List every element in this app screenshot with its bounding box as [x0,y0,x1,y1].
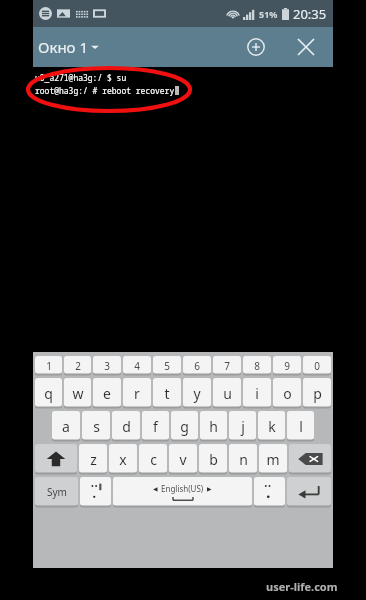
button[interactable]: a [52,411,80,441]
staticText: i [255,384,259,403]
button[interactable]: l [287,411,314,441]
button[interactable]: g [171,411,198,441]
button[interactable]: n [229,444,257,474]
staticText: p [313,384,322,403]
button[interactable]: 3 [93,356,121,375]
staticText: r [134,384,140,403]
button[interactable]: Close [293,34,319,60]
button[interactable]: 2 [64,356,91,375]
staticText: j [241,417,245,436]
button[interactable]: 7 [213,356,241,375]
button[interactable]: o [273,378,301,408]
staticText: v [179,450,187,469]
button[interactable]: d [112,411,140,441]
staticText: 7 [224,359,230,373]
staticText: c [150,450,157,469]
staticText: n [239,450,248,469]
staticText: e [103,384,111,403]
staticText: b [209,450,218,469]
staticText: g [180,417,189,436]
staticText: user-life.com [266,579,338,594]
button[interactable]: h [200,411,227,441]
button[interactable]: 1 [35,356,62,375]
staticText: ▶ [207,485,212,492]
button[interactable]: 9 [273,356,301,375]
button[interactable]: 0 [303,356,331,375]
button[interactable]: t [153,378,181,408]
button[interactable]: 8 [243,356,271,375]
button[interactable]: s [82,411,110,441]
button[interactable]: c [139,444,167,474]
staticText: 1 [46,359,52,373]
staticText: 51% [259,8,278,20]
button[interactable]: i [243,378,271,408]
button[interactable]: j [229,411,256,441]
staticText: 8 [254,359,260,373]
staticText: 0 [314,359,320,373]
staticText: 2 [75,359,81,373]
button[interactable]: k [258,411,285,441]
staticText: Окно 1 [38,37,88,57]
button[interactable]: Enter [287,477,331,507]
button[interactable]: z [79,444,107,474]
button[interactable]: 4 [123,356,151,375]
staticText: 9 [284,359,290,373]
staticText: 4 [134,359,140,373]
staticText: u [223,384,232,403]
staticText: l [299,417,303,436]
button[interactable]: ◀ [113,477,252,507]
staticText: 20:35 [293,5,327,23]
staticText: ◀ [153,485,158,492]
staticText: z [90,450,97,469]
staticText: d [122,417,131,436]
button[interactable]: u [213,378,241,408]
button[interactable]: Sym [35,477,78,507]
button[interactable]: Окно 1 [33,37,105,57]
staticText: a [62,417,70,436]
button[interactable]: Shift [35,444,77,474]
button[interactable]: p [303,378,331,408]
staticText: t [164,384,170,403]
staticText: w [72,384,84,403]
staticText: f [153,417,158,436]
button[interactable]: r [123,378,151,408]
staticText: h [209,417,218,436]
staticText: 3 [104,359,110,373]
button[interactable]: Backspace [289,444,331,474]
staticText: k [268,417,276,436]
button[interactable]: y [183,378,211,408]
button[interactable]: 5 [153,356,181,375]
staticText: u0_a271@ha3g:/ $ su [35,72,127,83]
staticText: q [44,384,53,403]
staticText: English(US) [161,483,204,494]
staticText: 5 [164,359,170,373]
staticText: s [93,417,100,436]
button[interactable]: x [109,444,137,474]
button[interactable]: v [169,444,197,474]
button[interactable]: Comma [80,477,111,507]
button[interactable]: Period [254,477,285,507]
button[interactable]: 6 [183,356,211,375]
button[interactable]: f [142,411,169,441]
button[interactable]: q [35,378,62,408]
button[interactable]: w [64,378,91,408]
staticText: m [266,450,280,469]
staticText: x [119,450,127,469]
staticText: o [283,384,292,403]
button[interactable]: b [199,444,227,474]
button[interactable]: New window [243,34,269,60]
staticText: y [193,384,201,403]
button[interactable]: u0_a271@ha3g:/ $ su [33,67,333,352]
staticText: Sym [47,485,67,499]
button[interactable]: e [93,378,121,408]
staticText: 6 [194,359,200,373]
staticText: root@ha3g:/ # reboot recovery [35,85,175,96]
button[interactable]: m [259,444,287,474]
